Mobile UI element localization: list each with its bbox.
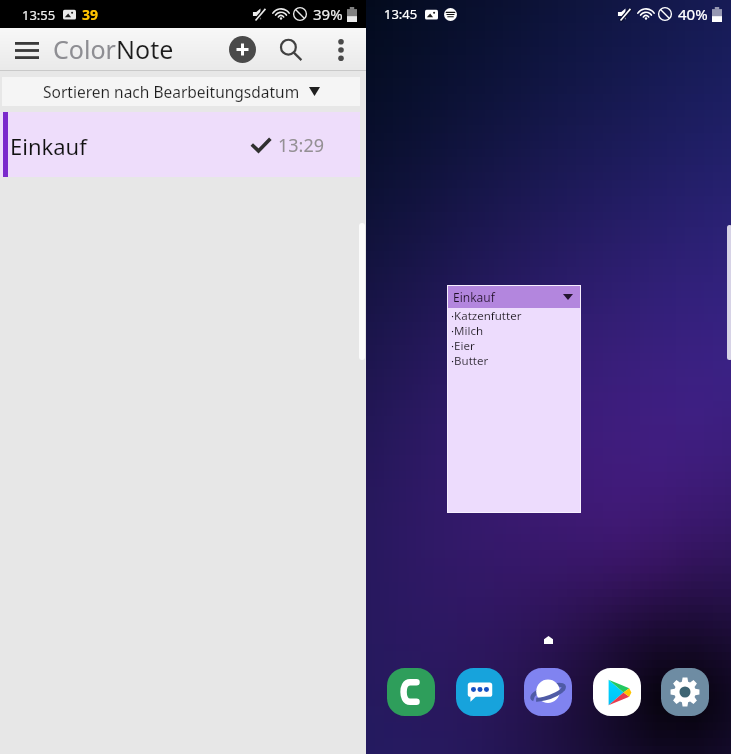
button[interactable]: Settings <box>657 664 713 720</box>
staticText: ·Milch <box>451 323 484 338</box>
button[interactable]: Play Store <box>589 664 645 720</box>
staticText: ·Katzenfutter <box>451 308 522 323</box>
staticText: 40% <box>678 4 708 24</box>
staticText: 39% <box>313 4 343 24</box>
staticText: 39 <box>82 5 99 24</box>
staticText: ·Eier <box>451 338 475 353</box>
button[interactable]: Add note <box>229 36 256 63</box>
staticText: Note <box>116 32 174 66</box>
staticText: Einkauf <box>10 131 87 161</box>
staticText: Sortieren nach Bearbeitungsdatum <box>43 81 300 102</box>
staticText: ·Butter <box>451 353 489 368</box>
button[interactable]: Messages <box>452 664 508 720</box>
staticText: Color <box>53 32 116 66</box>
staticText: 13:55 <box>22 6 56 24</box>
button[interactable]: Einkauf <box>448 286 580 512</box>
button[interactable]: Menu <box>8 31 46 69</box>
staticText: 13:29 <box>278 133 325 158</box>
button[interactable]: Internet <box>520 664 576 720</box>
button[interactable]: Sortieren nach Bearbeitungsdatum <box>2 77 360 106</box>
button[interactable]: Phone <box>383 664 439 720</box>
button[interactable]: More options <box>324 33 358 67</box>
staticText: 13:45 <box>384 5 418 23</box>
button[interactable]: Einkauf <box>0 112 360 177</box>
button[interactable]: Search <box>272 31 310 69</box>
staticText: Einkauf <box>453 289 495 305</box>
